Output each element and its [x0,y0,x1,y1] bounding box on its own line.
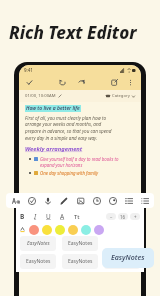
button[interactable]: Bulleted list [123,195,134,206]
button[interactable]: Color [107,195,118,206]
staticText: EasyNotes [111,253,145,263]
button[interactable]: EasyNotes [20,254,56,269]
button[interactable]: Edit [110,78,119,87]
button[interactable]: Image [75,195,86,206]
button[interactable]: EasyNotes [20,236,56,251]
staticText: 16 [120,214,126,220]
staticText: Give yourself half a day to read books t… [40,156,119,168]
button[interactable]: B [20,212,25,221]
button[interactable]: Undo [58,78,67,87]
staticText: 9:41 [24,67,33,73]
button[interactable]: Numbered list [139,195,150,206]
button[interactable]: Color swatch [55,225,65,235]
button[interactable]: EasyNotes [102,248,154,268]
button[interactable]: Color swatch [68,225,78,235]
button[interactable]: Done [25,78,34,87]
staticText: Category [112,93,130,99]
staticText: B [20,212,25,221]
button[interactable]: Draw [58,195,69,206]
staticText: EasyNotes [27,240,50,247]
button[interactable]: Font size [118,213,128,220]
button[interactable]: Color swatch [81,225,91,235]
staticText: 01/00, 10:00AM [25,93,56,99]
staticText: EasyNotes [26,258,51,265]
staticText: Rich Text Editor [9,21,137,44]
staticText: I [34,212,37,221]
button[interactable]: Voice [42,195,53,206]
staticText: Weekly arrangement [25,145,83,153]
button[interactable]: Text color [20,227,25,232]
staticText: First of all, you must clearly plan how … [25,115,112,141]
staticText: EasyNotes [110,258,135,265]
button[interactable]: More options [126,78,135,87]
staticText: − [110,214,113,220]
staticText: + [134,214,137,220]
button[interactable]: Color swatch [29,225,39,235]
button[interactable]: A [60,212,65,221]
staticText: How to live a better life [26,105,80,112]
staticText: U [46,212,51,221]
button[interactable]: Increase size [130,213,140,220]
button[interactable]: EasyNotes [62,236,98,251]
button[interactable]: Checklist [26,195,37,206]
button[interactable]: Reminder [91,195,102,206]
button[interactable]: Color swatch [42,225,52,235]
button[interactable]: Text style [10,195,21,206]
button[interactable]: Redo [77,78,86,87]
button[interactable]: Color swatch [94,225,104,235]
staticText: EasyNotes [68,240,93,247]
staticText: A [60,212,65,221]
staticText: EasyNotes [68,258,93,265]
button[interactable]: EasyNotes [62,254,98,269]
button[interactable]: U [46,212,51,221]
staticText: One day shopping with family [40,170,99,176]
button[interactable]: I [34,212,37,221]
staticText: Tt [74,213,80,221]
button[interactable]: EasyNotes [104,254,140,269]
button[interactable]: Decrease size [106,213,116,220]
